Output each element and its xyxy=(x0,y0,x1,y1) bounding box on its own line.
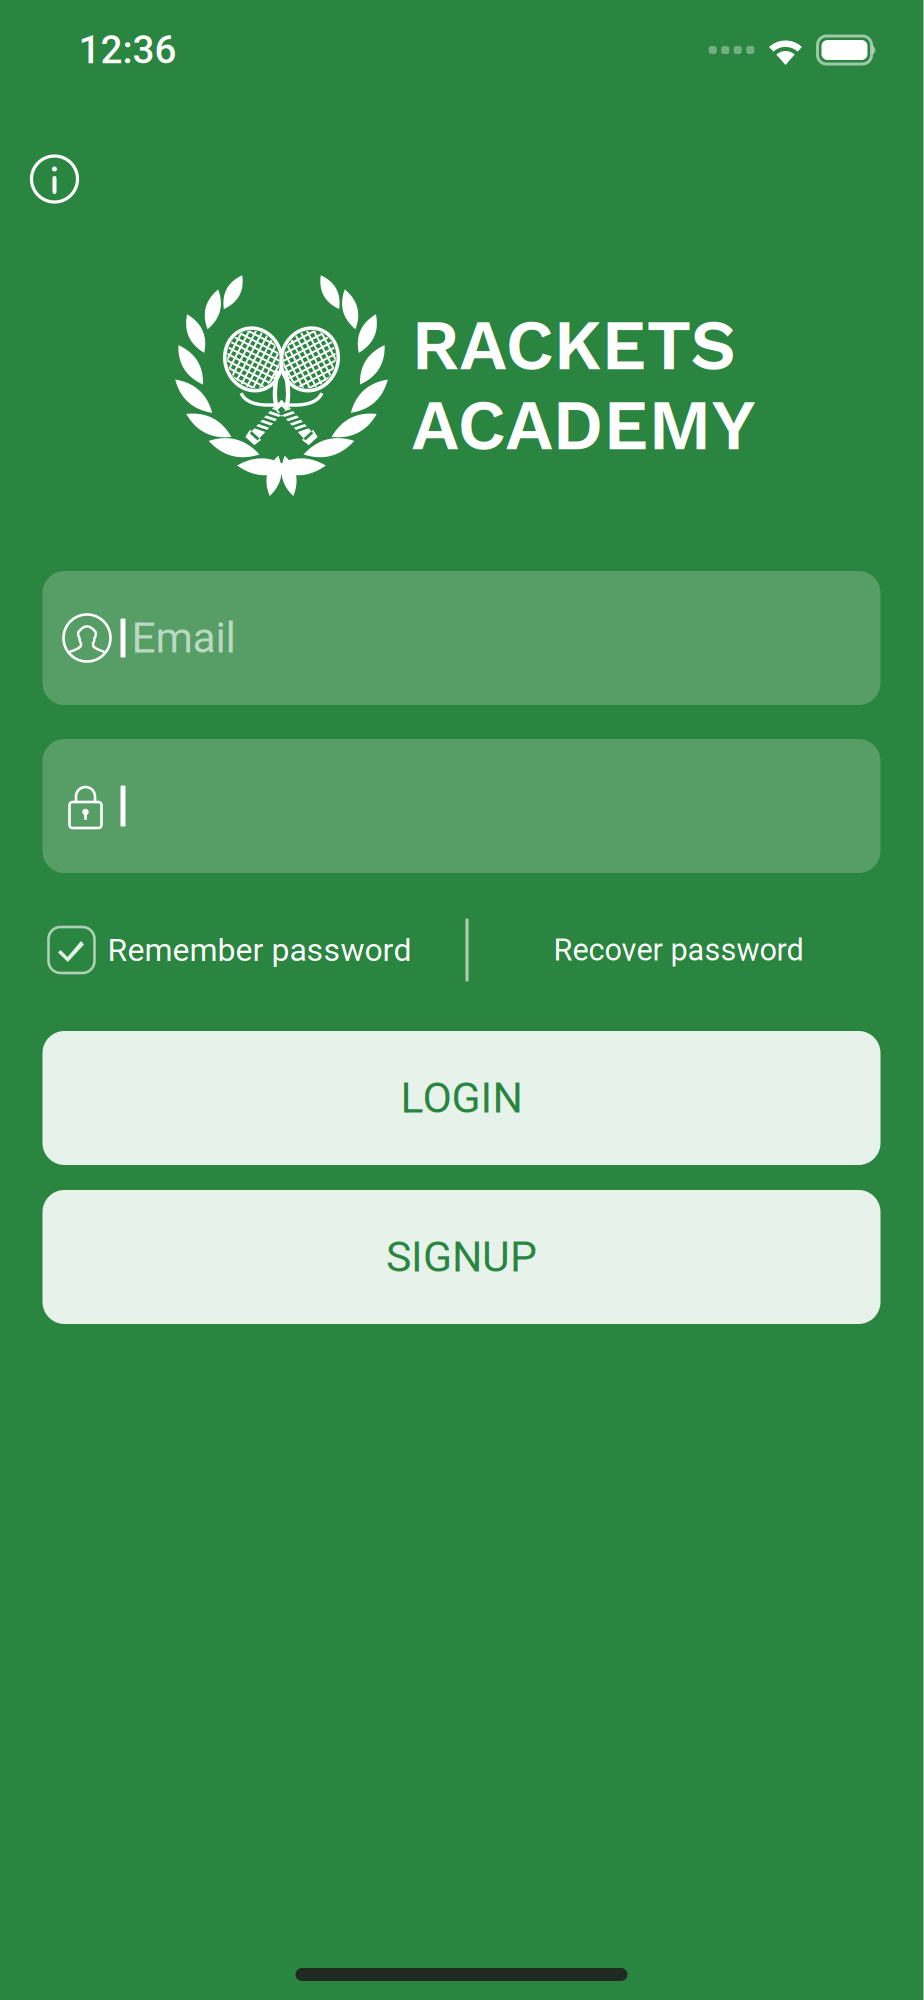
staticText: Email xyxy=(131,613,235,663)
staticText: RACKETS xyxy=(411,304,736,386)
button[interactable]: SIGNUP xyxy=(42,1190,880,1324)
button[interactable]: Recover password xyxy=(468,917,888,983)
staticText: SIGNUP xyxy=(386,1232,537,1282)
staticText: ACADEMY xyxy=(411,383,755,466)
button[interactable]: LOGIN xyxy=(42,1031,880,1165)
staticText: Recover password xyxy=(553,932,803,968)
staticText: LOGIN xyxy=(400,1073,522,1123)
button[interactable]: Remember password xyxy=(48,917,465,983)
staticText: 12:36 xyxy=(78,27,176,73)
button[interactable]: Information xyxy=(28,153,80,205)
staticText: Remember password xyxy=(107,931,411,969)
